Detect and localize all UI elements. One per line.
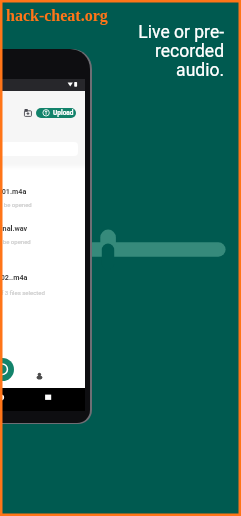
- staticText: Upload: [53, 109, 74, 117]
- staticText: File cannot be opened: [0, 201, 32, 208]
- staticText: Live or pre- recorded audio.: [0, 22, 224, 80]
- staticText: hack-cheat.org: [6, 7, 108, 25]
- button[interactable]: New folder: [24, 109, 32, 117]
- staticText: original.wav: [0, 224, 28, 232]
- staticText: Recording 01.m4a: [0, 187, 27, 195]
- button[interactable]: Upload: [36, 108, 76, 118]
- button[interactable]: original.wav: [0, 222, 85, 245]
- button[interactable]: Recording 01.m4a: [0, 185, 85, 208]
- button[interactable]: Account: [35, 370, 45, 381]
- button[interactable]: Record: [0, 358, 14, 381]
- button[interactable]: Search recordings: [0, 142, 78, 156]
- staticText: Recording 02..m4a: [0, 273, 28, 281]
- staticText: File cannot be opened: [0, 238, 31, 245]
- button[interactable]: Recording 02..m4a: [0, 271, 85, 296]
- staticText: 0 of 3 files selected: [0, 289, 45, 296]
